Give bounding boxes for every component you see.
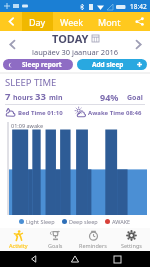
staticText: 18:42: [130, 2, 147, 11]
button[interactable]: Awake Time 08:46: [75, 107, 145, 118]
staticText: Deep sleep: [69, 218, 98, 225]
button[interactable]: Sleep report: [3, 59, 73, 70]
staticText: Day: [29, 16, 46, 28]
staticText: Goal: [127, 93, 143, 103]
staticText: Week: [60, 16, 84, 28]
staticText: Sleep report: [22, 60, 62, 69]
button[interactable]: Day: [22, 12, 53, 31]
staticText: Awake Time 08:46: [88, 109, 142, 117]
staticText: hours: [13, 93, 35, 103]
button[interactable]: Recents: [109, 251, 125, 267]
staticText: AWAKE: [112, 218, 131, 225]
staticText: Light Sleep: [26, 218, 55, 225]
button[interactable]: Settings: [112, 228, 150, 251]
button[interactable]: Next day: [126, 31, 150, 57]
staticText: TODAY: [52, 31, 89, 46]
staticText: 33: [35, 90, 49, 103]
button[interactable]: Activity: [0, 228, 37, 251]
staticText: Settings: [121, 242, 142, 249]
staticText: Add sleep: [92, 60, 124, 69]
staticText: Reminders: [79, 242, 107, 249]
button[interactable]: Week: [53, 12, 91, 31]
staticText: 94%: [100, 91, 119, 103]
staticText: 01:09 awake: [11, 122, 44, 129]
staticText: 7: [5, 90, 13, 103]
button[interactable]: Back: [0, 12, 22, 31]
staticText: Activity: [9, 242, 28, 249]
staticText: laupäev 30 jaanuar 2016: [32, 47, 119, 57]
staticText: SLEEP TIME: [5, 76, 57, 89]
button[interactable]: Reminders: [74, 228, 112, 251]
staticText: Month: [98, 16, 121, 28]
button[interactable]: Home: [67, 251, 83, 267]
staticText: Bed Time 01:10: [18, 109, 63, 117]
button[interactable]: Goals: [37, 228, 74, 251]
staticText: Goals: [48, 242, 63, 249]
staticText: min: [49, 93, 63, 103]
button[interactable]: Share: [128, 12, 150, 31]
button[interactable]: Add sleep: [77, 59, 147, 70]
button[interactable]: Previous day: [0, 31, 24, 57]
button[interactable]: Back: [26, 251, 42, 267]
button[interactable]: Bed Time 01:10: [5, 107, 75, 118]
button[interactable]: Month: [91, 12, 128, 31]
